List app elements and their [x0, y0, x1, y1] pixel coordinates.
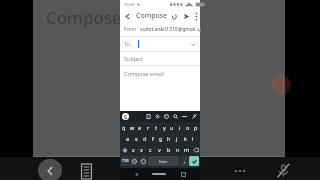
staticText: a — [126, 135, 130, 142]
button[interactable]: d — [142, 134, 148, 143]
button[interactable]: t — [153, 123, 159, 132]
staticText: G — [124, 114, 128, 120]
staticText: m — [184, 146, 190, 153]
button[interactable]: z — [130, 145, 136, 154]
button[interactable]: k — [182, 134, 188, 143]
staticText: u — [170, 124, 174, 131]
button[interactable]: Back — [38, 159, 62, 180]
button[interactable]: Subject — [120, 52, 200, 65]
button[interactable]: n — [174, 145, 181, 154]
button[interactable]: s — [133, 134, 140, 143]
staticText: h — [167, 135, 171, 142]
button[interactable]: From — [120, 23, 200, 36]
button[interactable]: q — [121, 123, 127, 132]
button[interactable]: Emoji — [130, 156, 138, 166]
button[interactable]: w — [129, 123, 135, 132]
button[interactable]: Enter — [189, 156, 199, 166]
button[interactable]: Send — [180, 10, 192, 22]
button[interactable]: Compose email — [120, 66, 200, 111]
staticText: w — [130, 124, 135, 131]
button[interactable]: g — [158, 134, 164, 143]
staticText: b — [167, 146, 171, 153]
staticText: g — [159, 135, 163, 142]
button[interactable]: u — [169, 123, 175, 132]
button[interactable]: Voice input off — [190, 112, 199, 121]
button[interactable]: Google — [122, 113, 129, 120]
other: Expand recipients — [188, 39, 198, 49]
button[interactable]: c — [147, 145, 154, 154]
staticText: n — [176, 146, 180, 153]
button[interactable]: Symbols — [121, 156, 129, 166]
button[interactable]: To — [120, 37, 200, 51]
staticText: k — [184, 135, 187, 142]
button[interactable]: i — [177, 123, 183, 132]
staticText: r — [147, 124, 150, 131]
staticText: o — [186, 124, 190, 131]
staticText: s — [135, 135, 138, 142]
button[interactable]: Comma — [139, 156, 147, 166]
staticText: d — [143, 135, 147, 142]
staticText: e — [138, 124, 142, 131]
button[interactable]: Back — [120, 9, 134, 23]
button[interactable]: x — [138, 145, 145, 154]
staticText: Compose email — [124, 70, 164, 77]
staticText: From — [124, 26, 137, 33]
staticText: sumit.ankit1310@gmail.com — [140, 26, 200, 33]
staticText: t — [155, 124, 157, 131]
button[interactable]: Keyboard tool 2 — [153, 112, 162, 121]
staticText: c — [149, 146, 152, 153]
button[interactable]: j — [174, 134, 180, 143]
button[interactable]: Microphone off — [272, 159, 294, 180]
button[interactable]: f — [150, 134, 156, 143]
staticText: q — [122, 124, 126, 131]
staticText: v — [158, 146, 161, 153]
staticText: z — [132, 146, 135, 153]
button[interactable]: Backspace — [191, 144, 200, 155]
button[interactable]: h — [166, 134, 172, 143]
button[interactable]: Period — [180, 156, 188, 166]
button[interactable]: v — [156, 145, 163, 154]
button[interactable]: Home — [152, 173, 166, 175]
staticText: ?123 — [122, 159, 129, 163]
staticText: i — [179, 124, 181, 131]
button[interactable]: l — [190, 134, 196, 143]
button[interactable]: Recent apps — [178, 169, 188, 179]
button[interactable]: Shift — [120, 144, 129, 155]
staticText: j — [176, 135, 178, 142]
staticText: To — [124, 41, 130, 48]
button[interactable]: Attach file — [168, 10, 180, 22]
button[interactable]: Back — [131, 169, 141, 179]
staticText: Compose — [136, 11, 168, 21]
button[interactable]: More options — [192, 10, 200, 22]
button[interactable]: b — [165, 145, 172, 154]
staticText: y — [163, 124, 166, 131]
button[interactable]: m — [183, 145, 190, 154]
button[interactable]: y — [161, 123, 167, 132]
button[interactable]: Space — [148, 156, 179, 166]
staticText: Enter — [159, 159, 168, 164]
staticText: Subject — [124, 55, 143, 62]
button[interactable]: p — [193, 123, 199, 132]
button[interactable]: Keyboard tool 3 — [162, 112, 171, 121]
button[interactable]: Keyboard tool 1 — [144, 112, 153, 121]
button[interactable]: Keyboard tool 4 — [171, 112, 180, 121]
staticText: 10:44 — [124, 2, 135, 7]
button[interactable]: Playlist — [76, 161, 96, 180]
button[interactable]: o — [185, 123, 191, 132]
staticText: p — [194, 124, 198, 131]
staticText: x — [140, 146, 143, 153]
button[interactable]: More options — [230, 161, 250, 180]
button[interactable]: e — [137, 123, 143, 132]
staticText: f — [152, 135, 154, 142]
button[interactable]: a — [124, 134, 131, 143]
staticText: l — [192, 135, 194, 142]
button[interactable]: Keyboard tool 5 — [180, 112, 189, 121]
button[interactable]: r — [145, 123, 151, 132]
staticText: Compose email — [46, 6, 170, 29]
